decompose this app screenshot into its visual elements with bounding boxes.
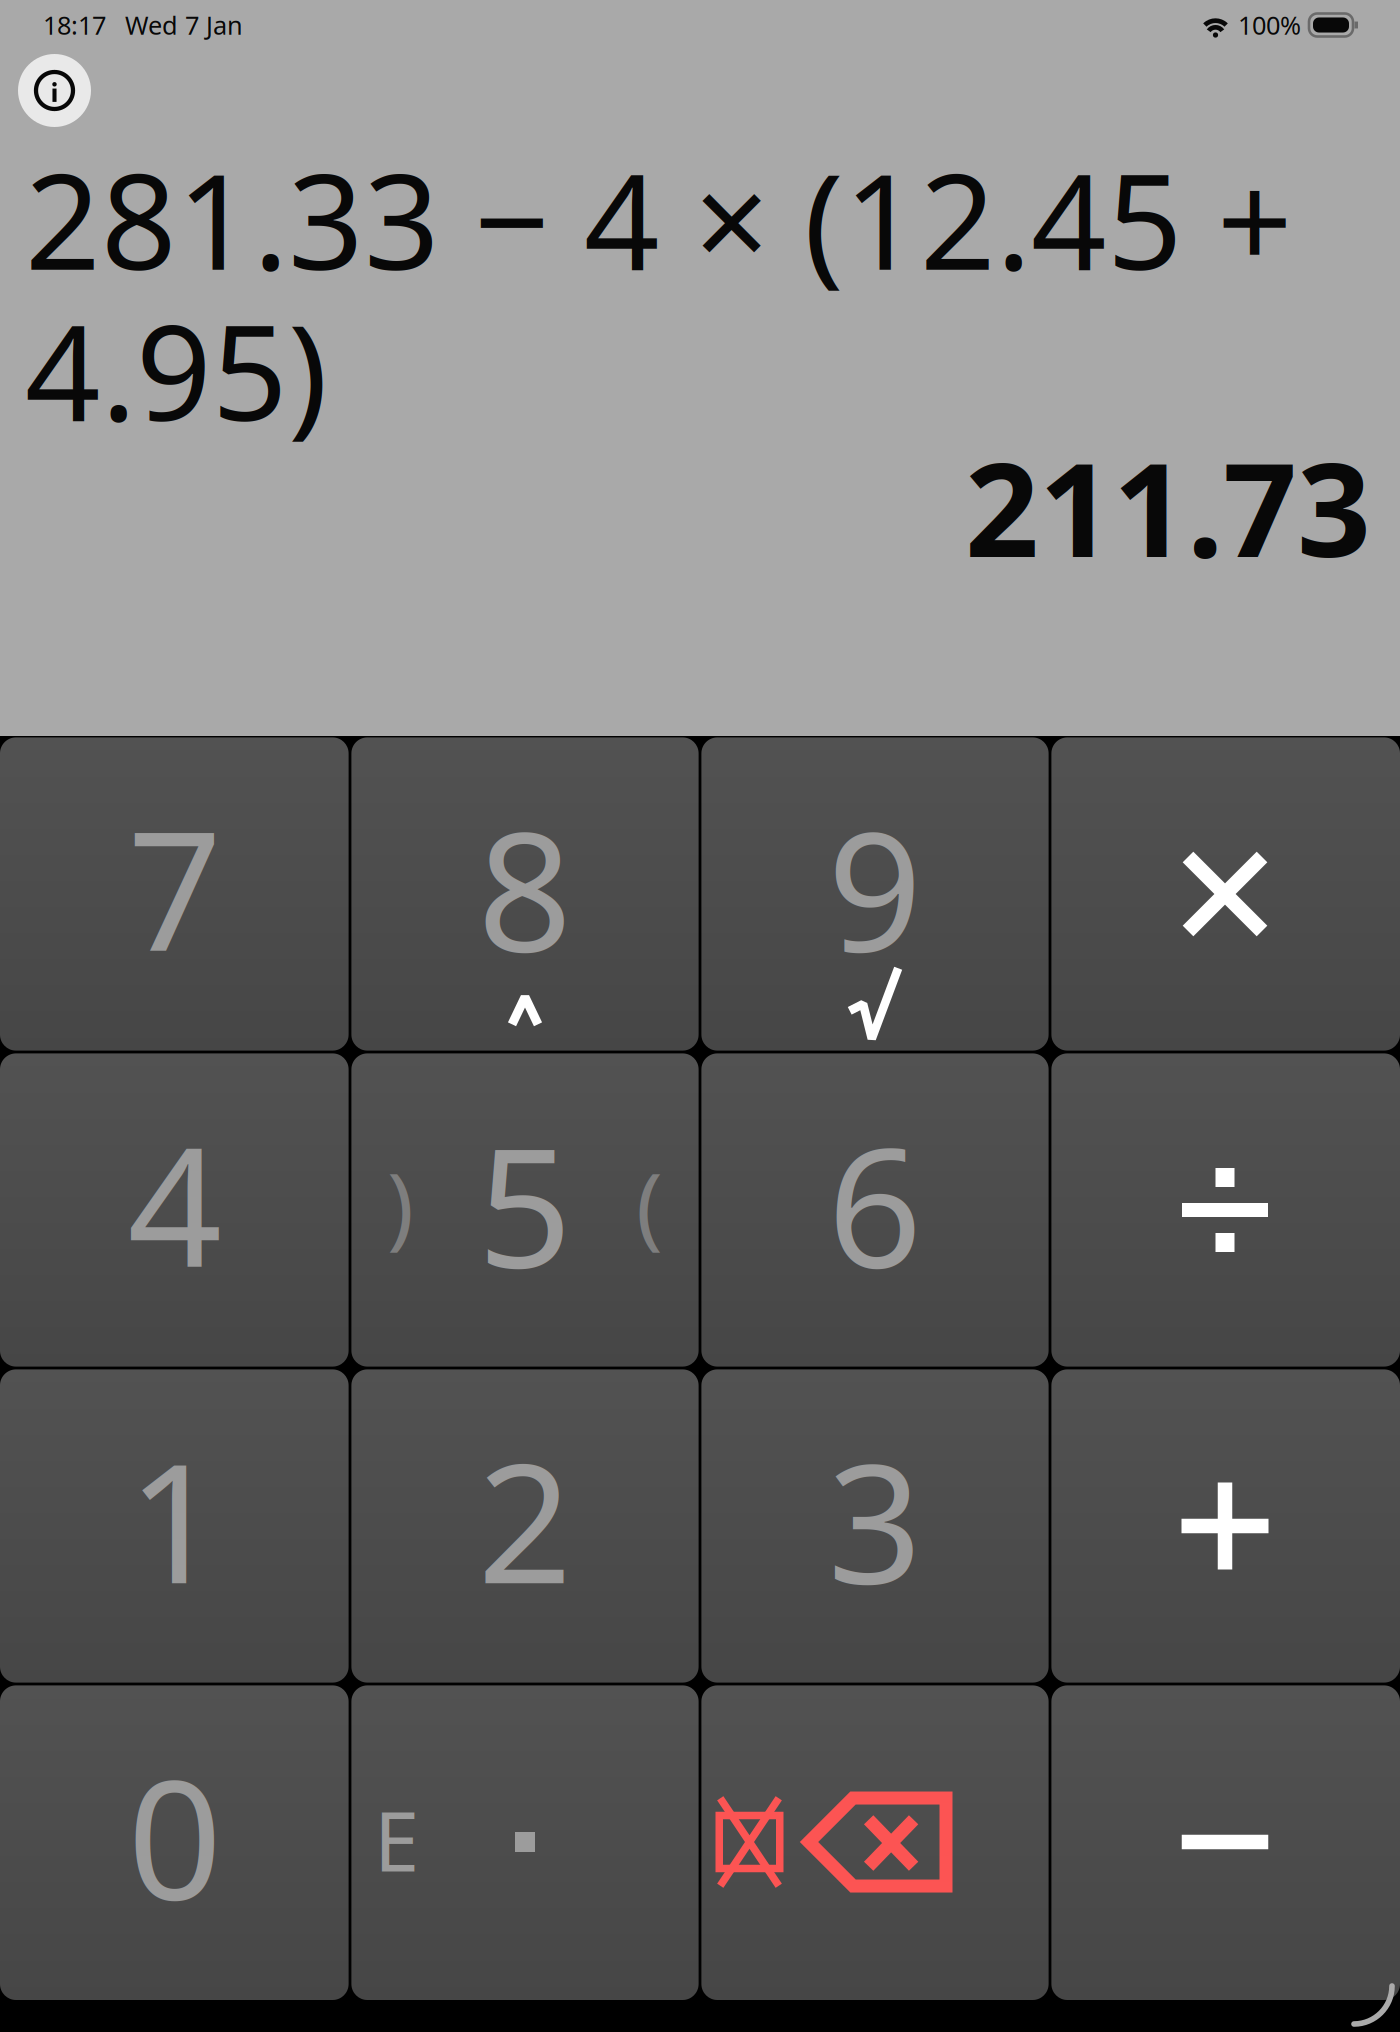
- button[interactable]: Decimal point: [350, 1684, 700, 2000]
- button[interactable]: 6: [700, 1052, 1050, 1368]
- staticText: 100%: [1238, 8, 1301, 42]
- staticText: E: [374, 1786, 419, 1894]
- staticText: 0: [127, 1725, 222, 1945]
- button[interactable]: 0: [0, 1684, 350, 2000]
- staticText: 5: [477, 1093, 572, 1313]
- staticText: 18:17: [43, 8, 106, 42]
- staticText: 1: [127, 1409, 222, 1629]
- staticText: 6: [827, 1093, 922, 1313]
- staticText: (: [636, 1145, 663, 1263]
- staticText: 4: [127, 1093, 222, 1313]
- button[interactable]: Info: [18, 54, 91, 127]
- button[interactable]: 4: [0, 1052, 350, 1368]
- staticText: 3: [827, 1409, 922, 1629]
- staticText: 9: [827, 777, 922, 997]
- staticText: 8: [477, 777, 572, 997]
- button[interactable]: 1: [0, 1368, 350, 1684]
- button[interactable]: 3: [700, 1368, 1050, 1684]
- button[interactable]: Multiply: [1050, 736, 1400, 1052]
- button[interactable]: 8: [350, 736, 700, 1052]
- button[interactable]: Divide: [1050, 1052, 1400, 1368]
- staticText: Wed 7 Jan: [125, 8, 243, 42]
- staticText: 211.73: [965, 421, 1371, 593]
- button[interactable]: Add: [1050, 1368, 1400, 1684]
- staticText: 281.33 − 4 × (12.45 +: [25, 131, 1293, 306]
- staticText: 7: [127, 777, 222, 997]
- staticText: 4.95): [25, 282, 328, 457]
- staticText: 2: [477, 1409, 572, 1629]
- button[interactable]: 9: [700, 736, 1050, 1052]
- button[interactable]: 5: [350, 1052, 700, 1368]
- button[interactable]: Clear and delete: [700, 1684, 1050, 2000]
- button[interactable]: 2: [350, 1368, 700, 1684]
- button[interactable]: 7: [0, 736, 350, 1052]
- button[interactable]: Subtract: [1050, 1684, 1400, 2000]
- staticText: ): [387, 1145, 414, 1263]
